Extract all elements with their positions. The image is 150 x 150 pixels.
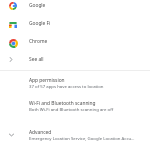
staticText: Emergency Location Service, Google Locat… — [29, 135, 135, 141]
staticText: App permission — [29, 77, 65, 84]
button[interactable]: Google Fi — [0, 14, 150, 32]
staticText: See all — [29, 56, 44, 63]
button[interactable]: Chrome — [0, 32, 150, 50]
button[interactable]: App permission — [0, 74, 150, 92]
button[interactable]: Wi-Fi and Bluetooth scanning — [0, 97, 150, 115]
other: See all — [9, 57, 13, 62]
staticText: Google Fi — [29, 20, 51, 27]
staticText: Google — [29, 2, 46, 9]
staticText: Both Wi-Fi and Bluetooth scanning are of… — [29, 106, 114, 112]
button[interactable]: Expand advanced — [0, 126, 150, 144]
staticText: 37 of 57 apps have access to location — [29, 83, 104, 89]
staticText: Wi-Fi and Bluetooth scanning — [29, 100, 96, 107]
staticText: Chrome — [29, 38, 48, 45]
button[interactable]: Google — [0, 0, 150, 14]
other: Expand advanced — [9, 133, 14, 137]
staticText: Advanced — [29, 129, 52, 136]
button[interactable]: See all — [0, 50, 150, 68]
